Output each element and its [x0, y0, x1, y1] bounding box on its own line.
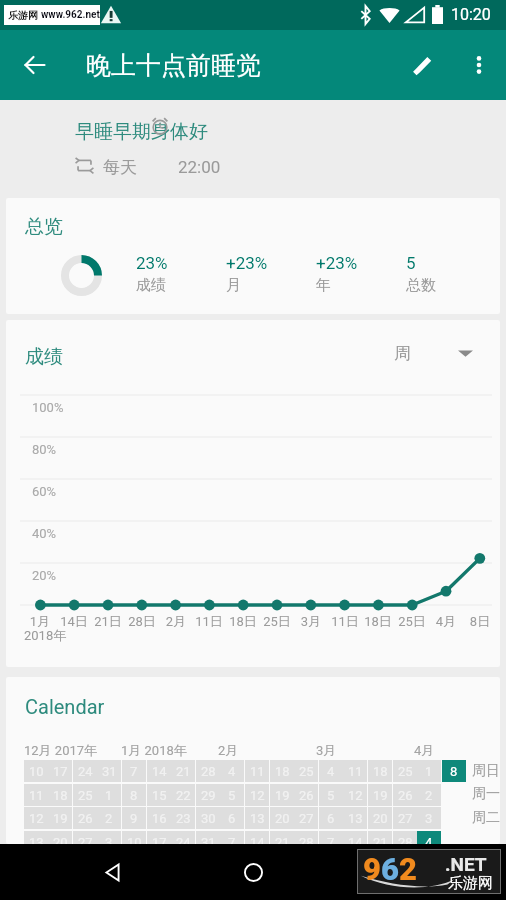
button[interactable]: 6 [319, 807, 343, 829]
staticText: 9 [363, 851, 381, 887]
staticText: 9 [130, 811, 138, 826]
staticText: 8 [130, 788, 138, 803]
button[interactable]: 31 [97, 760, 121, 782]
staticText: 11 [29, 788, 44, 803]
staticText: 14 [250, 835, 265, 844]
button[interactable]: 29 [196, 784, 220, 806]
button[interactable]: 12 [343, 784, 367, 806]
staticText: 17 [152, 835, 167, 844]
staticText: 10:20 [451, 5, 491, 24]
button[interactable]: 12 [245, 784, 269, 806]
button[interactable]: 4 [417, 831, 441, 844]
button[interactable]: 18 [48, 784, 72, 806]
button[interactable]: 13 [343, 807, 367, 829]
button[interactable]: 24 [171, 831, 195, 844]
button[interactable]: 26 [73, 807, 97, 829]
button[interactable]: 26 [294, 784, 318, 806]
button[interactable]: 31 [196, 831, 220, 844]
staticText: 2 [425, 788, 433, 803]
button[interactable]: 16 [147, 807, 171, 829]
button[interactable]: 13 [24, 831, 48, 844]
button[interactable]: 25 [73, 784, 97, 806]
staticText: 80% [32, 442, 57, 457]
button[interactable]: 7 [319, 831, 343, 844]
staticText: 10 [29, 764, 44, 779]
button[interactable]: 17 [48, 760, 72, 782]
button[interactable]: 20 [270, 807, 294, 829]
button[interactable]: Back [88, 848, 136, 896]
button[interactable]: 28 [393, 831, 417, 844]
staticText: 年 [316, 276, 331, 295]
button[interactable]: More options [455, 41, 503, 89]
staticText: 总数 [406, 276, 436, 295]
button[interactable]: 2 [417, 784, 441, 806]
button[interactable]: 7 [122, 760, 146, 782]
button[interactable]: Recent apps [370, 848, 418, 896]
button[interactable]: 11 [245, 760, 269, 782]
button[interactable]: 15 [147, 784, 171, 806]
button[interactable]: 27 [294, 807, 318, 829]
button[interactable]: 18 [270, 760, 294, 782]
button[interactable]: 11 [24, 784, 48, 806]
button[interactable]: 28 [294, 831, 318, 844]
button[interactable]: Home [229, 848, 277, 896]
staticText: 成绩 [25, 345, 63, 369]
button[interactable]: 28 [196, 760, 220, 782]
button[interactable]: 27 [73, 831, 97, 844]
button[interactable]: 18 [368, 760, 392, 782]
button[interactable]: 30 [196, 807, 220, 829]
button[interactable]: 20 [48, 831, 72, 844]
staticText: 26 [398, 788, 413, 803]
button[interactable]: 4 [319, 760, 343, 782]
button[interactable]: 22 [171, 784, 195, 806]
button[interactable]: 17 [147, 831, 171, 844]
button[interactable]: Edit [398, 41, 446, 89]
button[interactable]: 14 [245, 831, 269, 844]
button[interactable]: 21 [171, 760, 195, 782]
staticText: 6 [327, 811, 335, 826]
button[interactable]: Back [11, 41, 59, 89]
button[interactable]: 21 [270, 831, 294, 844]
button[interactable]: 7 [220, 831, 244, 844]
staticText: 1月 2018年 [121, 742, 187, 758]
button[interactable]: 周 [386, 333, 496, 373]
button[interactable]: 5 [220, 784, 244, 806]
button[interactable]: 19 [368, 784, 392, 806]
button[interactable]: 27 [393, 807, 417, 829]
button[interactable]: 19 [270, 784, 294, 806]
button[interactable]: 12 [24, 807, 48, 829]
button[interactable]: 8 [122, 784, 146, 806]
button[interactable]: 25 [393, 760, 417, 782]
staticText: 2 [105, 811, 113, 826]
staticText: 14 [152, 764, 167, 779]
button[interactable]: 20 [368, 807, 392, 829]
button[interactable]: 10 [122, 831, 146, 844]
button[interactable]: 26 [393, 784, 417, 806]
button[interactable]: 3 [417, 807, 441, 829]
staticText: 18日 [219, 613, 267, 629]
button[interactable]: 11 [343, 760, 367, 782]
button[interactable]: 14 [343, 831, 367, 844]
button[interactable]: 25 [294, 760, 318, 782]
button[interactable]: 24 [73, 760, 97, 782]
staticText: +23% [316, 253, 358, 273]
button[interactable]: 21 [368, 831, 392, 844]
button[interactable]: 5 [319, 784, 343, 806]
button[interactable]: 2 [97, 807, 121, 829]
button[interactable]: 9 [122, 807, 146, 829]
staticText: 成绩 [136, 276, 166, 295]
button[interactable]: 8 [442, 760, 466, 782]
button[interactable]: 14 [147, 760, 171, 782]
button[interactable]: 6 [220, 807, 244, 829]
button[interactable]: 3 [97, 831, 121, 844]
staticText: 28 [201, 764, 216, 779]
staticText: 8 [450, 764, 458, 779]
button[interactable]: 10 [24, 760, 48, 782]
staticText: 14 [348, 835, 363, 844]
button[interactable]: 4 [220, 760, 244, 782]
button[interactable]: 13 [245, 807, 269, 829]
button[interactable]: 19 [48, 807, 72, 829]
button[interactable]: 23 [171, 807, 195, 829]
